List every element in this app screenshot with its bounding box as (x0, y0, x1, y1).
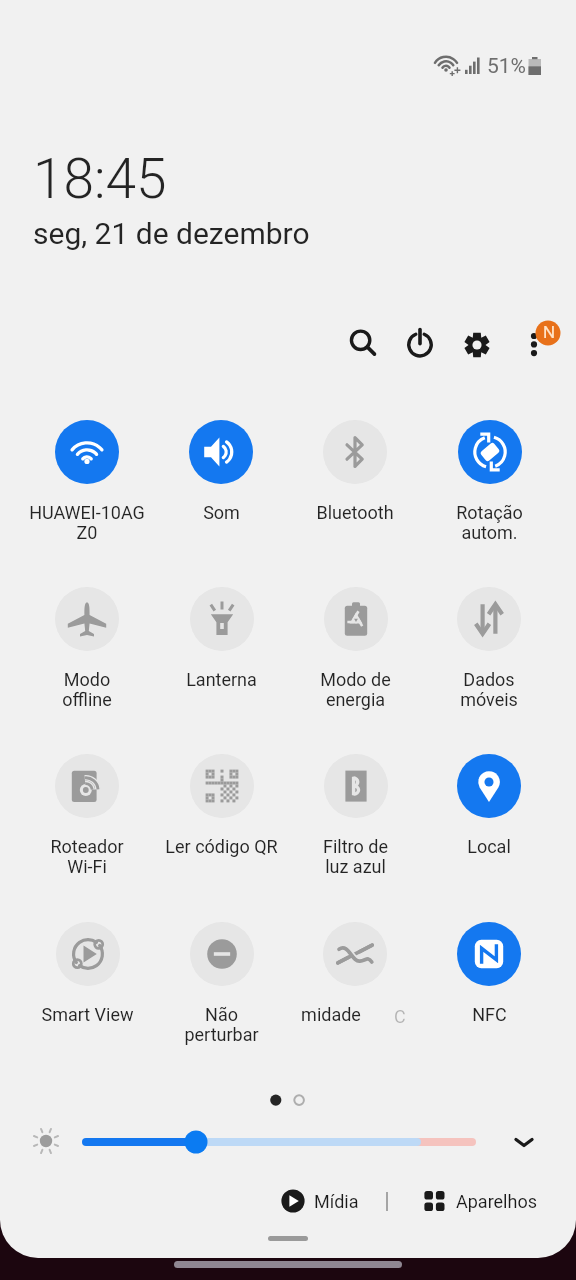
staticText: Aparelhos (456, 1191, 537, 1212)
button[interactable]: Dados móveis (422, 587, 556, 722)
button[interactable]: Roteador Wi-Fi (20, 754, 154, 889)
staticText: Smart View (41, 1004, 134, 1025)
staticText: seg, 21 de dezembro (33, 216, 310, 251)
staticText: Dados móveis (460, 669, 518, 710)
staticText: Filtro de luz azul (323, 836, 388, 877)
staticText: Lanterna (186, 669, 257, 690)
staticText: NFC (472, 1004, 507, 1025)
button[interactable]: Rotação autom. (422, 420, 556, 555)
staticText: Bluetooth (316, 502, 394, 523)
button[interactable]: Som (154, 420, 288, 555)
staticText: Som (203, 502, 240, 523)
staticText: HUAWEI-10AG Z0 (29, 502, 145, 543)
button[interactable]: Search (340, 320, 386, 366)
button[interactable]: Bluetooth (288, 420, 422, 555)
staticText: 51% (487, 54, 526, 79)
staticText: Roteador Wi-Fi (50, 836, 124, 877)
button[interactable]: Mídia (280, 1186, 359, 1216)
button[interactable]: Aparelhos (423, 1186, 537, 1216)
button[interactable]: Smart View (20, 922, 154, 1057)
staticText: Local (467, 836, 511, 857)
button[interactable]: Brightness (24, 1119, 68, 1163)
button[interactable]: Modo de energia (288, 587, 422, 722)
staticText: Mídia (314, 1191, 359, 1212)
button[interactable]: Lanterna (154, 587, 288, 722)
staticText: Modo offline (62, 669, 112, 710)
staticText: N (541, 322, 557, 342)
button[interactable]: Settings (454, 322, 500, 368)
button[interactable]: Brightness slider (80, 1124, 482, 1160)
button[interactable]: HUAWEI-10AG Z0 (20, 420, 154, 555)
button[interactable]: More options (515, 314, 569, 368)
staticText: midade (301, 1004, 361, 1025)
button[interactable]: midade (288, 922, 422, 1057)
button[interactable]: Não perturbar (154, 922, 288, 1057)
staticText: Ler código QR (165, 836, 278, 857)
button[interactable]: Expand quick settings (503, 1121, 545, 1163)
staticText: C (394, 1006, 406, 1027)
button[interactable]: Modo offline (20, 587, 154, 722)
button[interactable]: Power off (397, 320, 443, 366)
button[interactable]: NFC (422, 922, 556, 1057)
button[interactable]: Ler código QR (154, 754, 288, 889)
staticText: Rotação autom. (456, 502, 523, 543)
button[interactable]: Filtro de luz azul (288, 754, 422, 889)
staticText: Não perturbar (184, 1004, 259, 1045)
staticText: 18:45 (33, 147, 167, 211)
button[interactable]: Local (422, 754, 556, 889)
staticText: Modo de energia (320, 669, 391, 710)
